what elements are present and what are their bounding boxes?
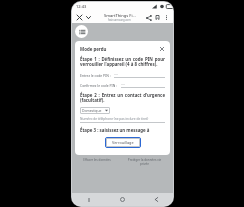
staticText: Étape 2 : Entrez un contact d'urgence (f… <box>80 92 165 104</box>
button[interactable]: Back <box>139 193 173 206</box>
staticText: Domestique <box>82 108 102 113</box>
button[interactable]: ···· <box>121 82 165 88</box>
button[interactable]: Menu <box>75 25 88 38</box>
staticText: Étape 3 : saisissez un message à <box>80 127 150 133</box>
staticText: SmartThings Fi... <box>104 13 136 18</box>
staticText: ···· <box>121 82 125 87</box>
button[interactable]: Share <box>144 13 153 22</box>
button[interactable]: Expand <box>84 13 93 22</box>
button[interactable]: More options <box>162 13 170 21</box>
button[interactable]: Verrouillage <box>106 138 140 147</box>
staticText: Numéro de téléphone (ne pas inclure de t… <box>80 117 149 121</box>
staticText: fwiz.samsung.com <box>108 18 131 22</box>
staticText: Effacer les données <box>83 158 111 162</box>
staticText: Protéger la données vie privée <box>124 158 165 166</box>
button[interactable]: Close dialog <box>158 45 165 52</box>
button[interactable]: Effacer les données <box>80 158 114 162</box>
button[interactable]: Bookmark <box>153 13 162 22</box>
staticText: Mode perdu <box>80 46 107 52</box>
button[interactable]: Home <box>105 193 139 206</box>
button[interactable]: Recents <box>72 193 105 206</box>
button[interactable]: Protéger la données vie privée <box>124 158 165 166</box>
button[interactable]: Close <box>75 13 84 22</box>
staticText: Confirmez le code PIN : <box>80 83 118 88</box>
button[interactable]: ···· <box>114 72 165 78</box>
staticText: 12:43 <box>76 4 87 9</box>
staticText: Étape 1 : Définissez un code PIN pour ve… <box>80 56 165 68</box>
staticText: Entrez le code PIN : <box>80 73 111 78</box>
button[interactable]: Domestique <box>80 107 110 114</box>
staticText: Verrouillage <box>112 140 134 145</box>
staticText: ···· <box>114 72 118 77</box>
